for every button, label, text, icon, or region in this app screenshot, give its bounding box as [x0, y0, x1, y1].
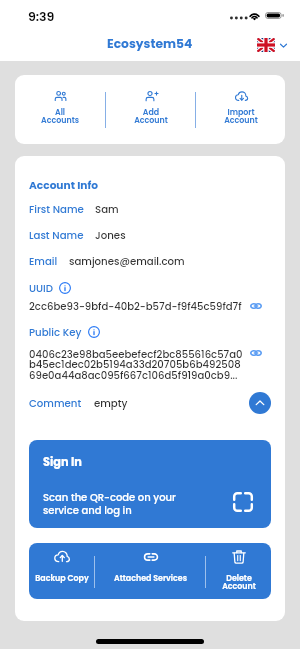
staticText: Import Account	[224, 107, 258, 126]
button[interactable]: Sign In	[29, 440, 271, 528]
staticText: Comment	[29, 396, 82, 410]
button[interactable]: Copy UUID	[243, 303, 271, 309]
button[interactable]: About Public Key	[88, 326, 100, 338]
staticText: All Accounts	[41, 107, 79, 126]
staticText: 2cc6be93-9bfd-40b2-b57d-f9f45c59fd7f	[29, 299, 243, 313]
staticText: Public Key	[29, 325, 82, 339]
staticText: Jones	[95, 228, 126, 242]
staticText: Last Name	[29, 228, 84, 242]
staticText: Attached Services	[114, 573, 187, 584]
button[interactable]: Attached Services	[114, 548, 187, 584]
staticText: Add Account	[134, 107, 168, 126]
button[interactable]: Backup Copy	[35, 548, 89, 584]
staticText: Email	[29, 254, 58, 268]
staticText: Sign In	[43, 454, 82, 470]
button[interactable]: Collapse	[249, 392, 271, 414]
button[interactable]: Copy public key	[243, 347, 271, 356]
staticText: samjones@email.com	[69, 254, 185, 268]
button[interactable]: Add Account	[134, 89, 168, 126]
staticText: UUID	[29, 281, 53, 295]
staticText: Account Info	[29, 178, 99, 193]
staticText: Sam	[95, 202, 119, 216]
staticText: empty	[94, 396, 128, 410]
button[interactable]: Import Account	[224, 89, 258, 126]
staticText: Scan the QR-code on your service and log…	[43, 490, 232, 517]
staticText: 9:39	[28, 8, 55, 25]
button[interactable]: Change language	[255, 35, 291, 55]
button[interactable]: About UUID	[59, 282, 71, 294]
button[interactable]: Delete Account	[222, 548, 256, 592]
staticText: Delete Account	[222, 573, 256, 592]
staticText: Backup Copy	[35, 573, 89, 584]
button[interactable]: All Accounts	[41, 89, 79, 126]
staticText: Ecosystem54	[107, 35, 193, 52]
staticText: 0406c23e98ba5eebefecf2bc855616c57a0 b45e…	[29, 347, 243, 382]
staticText: First Name	[29, 202, 84, 216]
